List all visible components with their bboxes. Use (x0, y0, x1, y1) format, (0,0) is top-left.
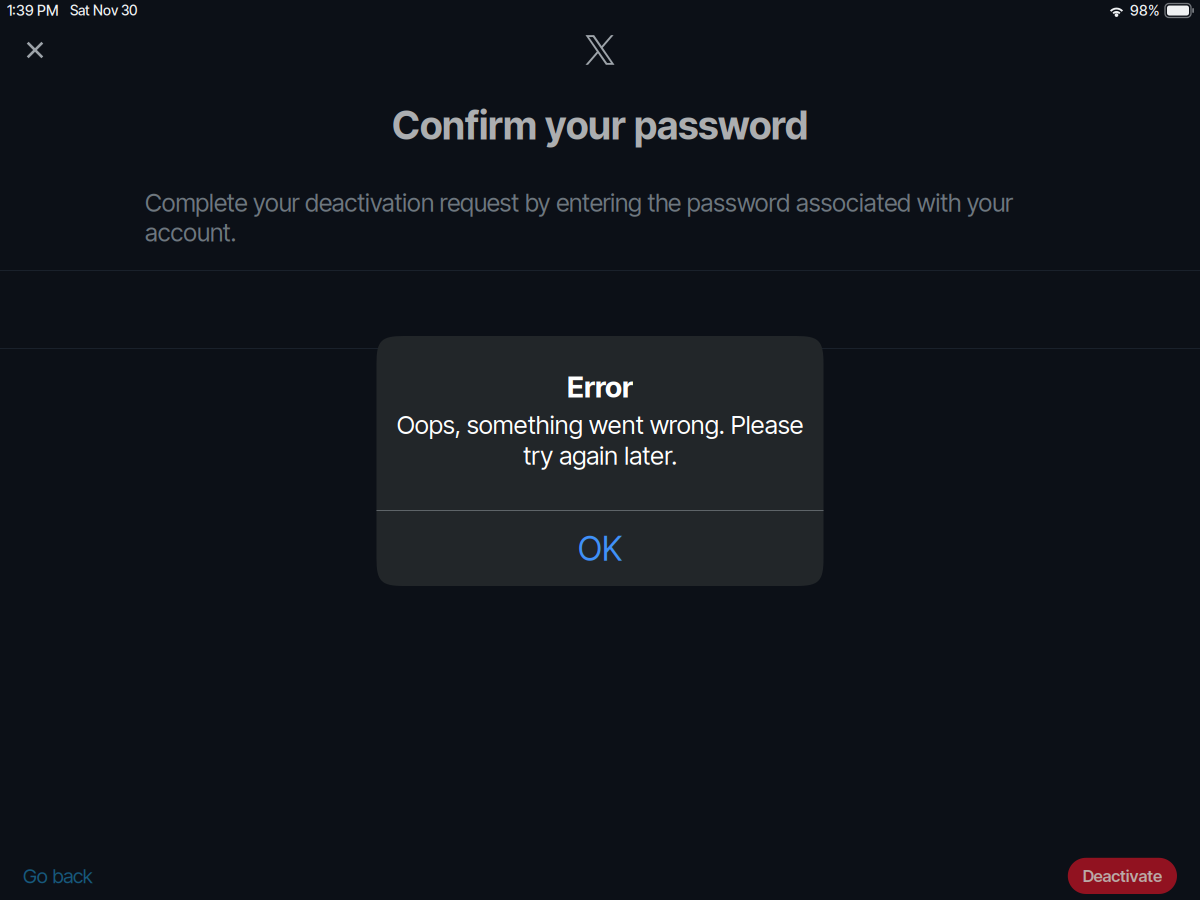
staticText: Deactivate (1083, 866, 1162, 886)
staticText: Oops, something went wrong. Please try a… (396, 409, 803, 471)
staticText: Complete your deactivation request by en… (145, 188, 1013, 247)
staticText: 98% (1130, 2, 1160, 19)
button[interactable]: Close (14, 29, 56, 71)
button[interactable]: OK (376, 511, 823, 586)
staticText: Go back (23, 864, 93, 888)
staticText: 1:39 PM (7, 2, 59, 19)
staticText: Confirm your password (392, 102, 808, 149)
staticText: Error (567, 369, 633, 404)
button[interactable]: Deactivate (1068, 858, 1177, 894)
staticText: OK (578, 528, 622, 569)
button[interactable]: Go back (0, 853, 116, 899)
staticText: Sat Nov 30 (70, 2, 137, 19)
